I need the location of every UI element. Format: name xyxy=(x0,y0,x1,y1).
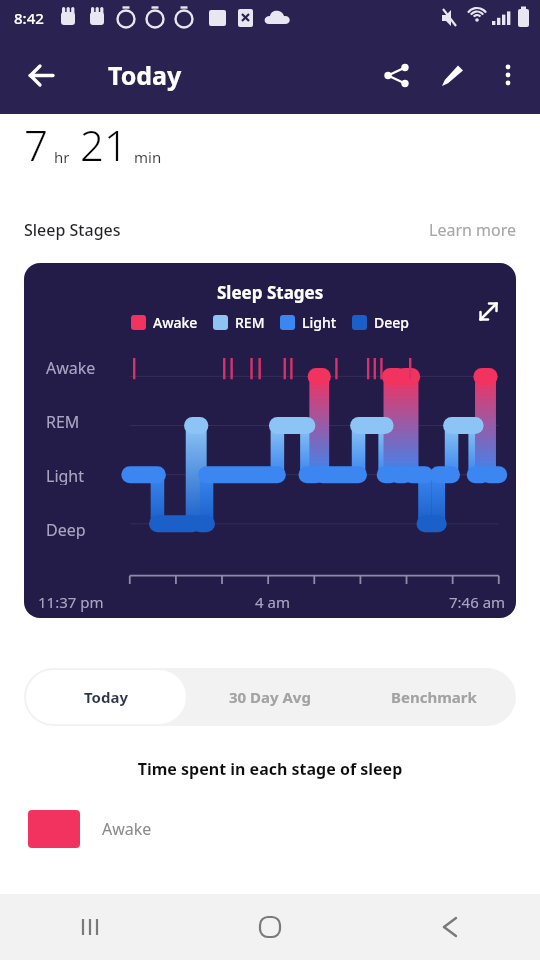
staticText: Learn more xyxy=(429,219,516,241)
staticText: Awake xyxy=(102,818,152,840)
staticText: Awake xyxy=(46,357,96,377)
button[interactable]: More options xyxy=(480,47,536,103)
staticText: Awake xyxy=(153,313,198,332)
staticText: Deep xyxy=(374,313,409,332)
staticText: min xyxy=(134,147,162,167)
button[interactable]: Edit xyxy=(424,47,480,103)
staticText: 11:37 pm xyxy=(38,592,104,612)
staticText: 8:42 xyxy=(14,8,44,28)
staticText: 7 xyxy=(24,116,48,173)
staticText: Deep xyxy=(46,519,86,539)
staticText: Light xyxy=(302,313,337,332)
button[interactable]: Back xyxy=(360,894,540,960)
staticText: Today xyxy=(84,687,129,707)
staticText: REM xyxy=(46,411,80,431)
staticText: REM xyxy=(235,313,265,332)
button[interactable]: Home xyxy=(180,894,360,960)
staticText: Sleep Stages xyxy=(217,281,324,304)
staticText: Time spent in each stage of sleep xyxy=(0,758,540,780)
button[interactable]: Benchmark xyxy=(352,668,516,726)
staticText: hr xyxy=(54,147,70,167)
button[interactable]: Back xyxy=(12,46,70,104)
staticText: Sleep Stages xyxy=(24,219,121,241)
button[interactable]: Awake xyxy=(28,810,540,848)
staticText: Benchmark xyxy=(391,687,477,707)
staticText: Light xyxy=(46,465,85,485)
staticText: Today xyxy=(108,58,182,92)
button[interactable]: Learn more xyxy=(429,219,516,241)
button[interactable]: Sleep Stages xyxy=(24,263,516,618)
button[interactable]: Recent apps xyxy=(0,894,180,960)
button[interactable]: Today xyxy=(26,670,186,724)
button[interactable]: 30 Day Avg xyxy=(188,668,352,726)
staticText: 7:46 am xyxy=(449,592,506,612)
button[interactable]: Share xyxy=(368,47,424,103)
button[interactable]: Expand chart xyxy=(466,289,510,333)
staticText: 4 am xyxy=(255,592,290,612)
staticText: 30 Day Avg xyxy=(229,687,311,707)
staticText: 21 xyxy=(80,116,128,173)
